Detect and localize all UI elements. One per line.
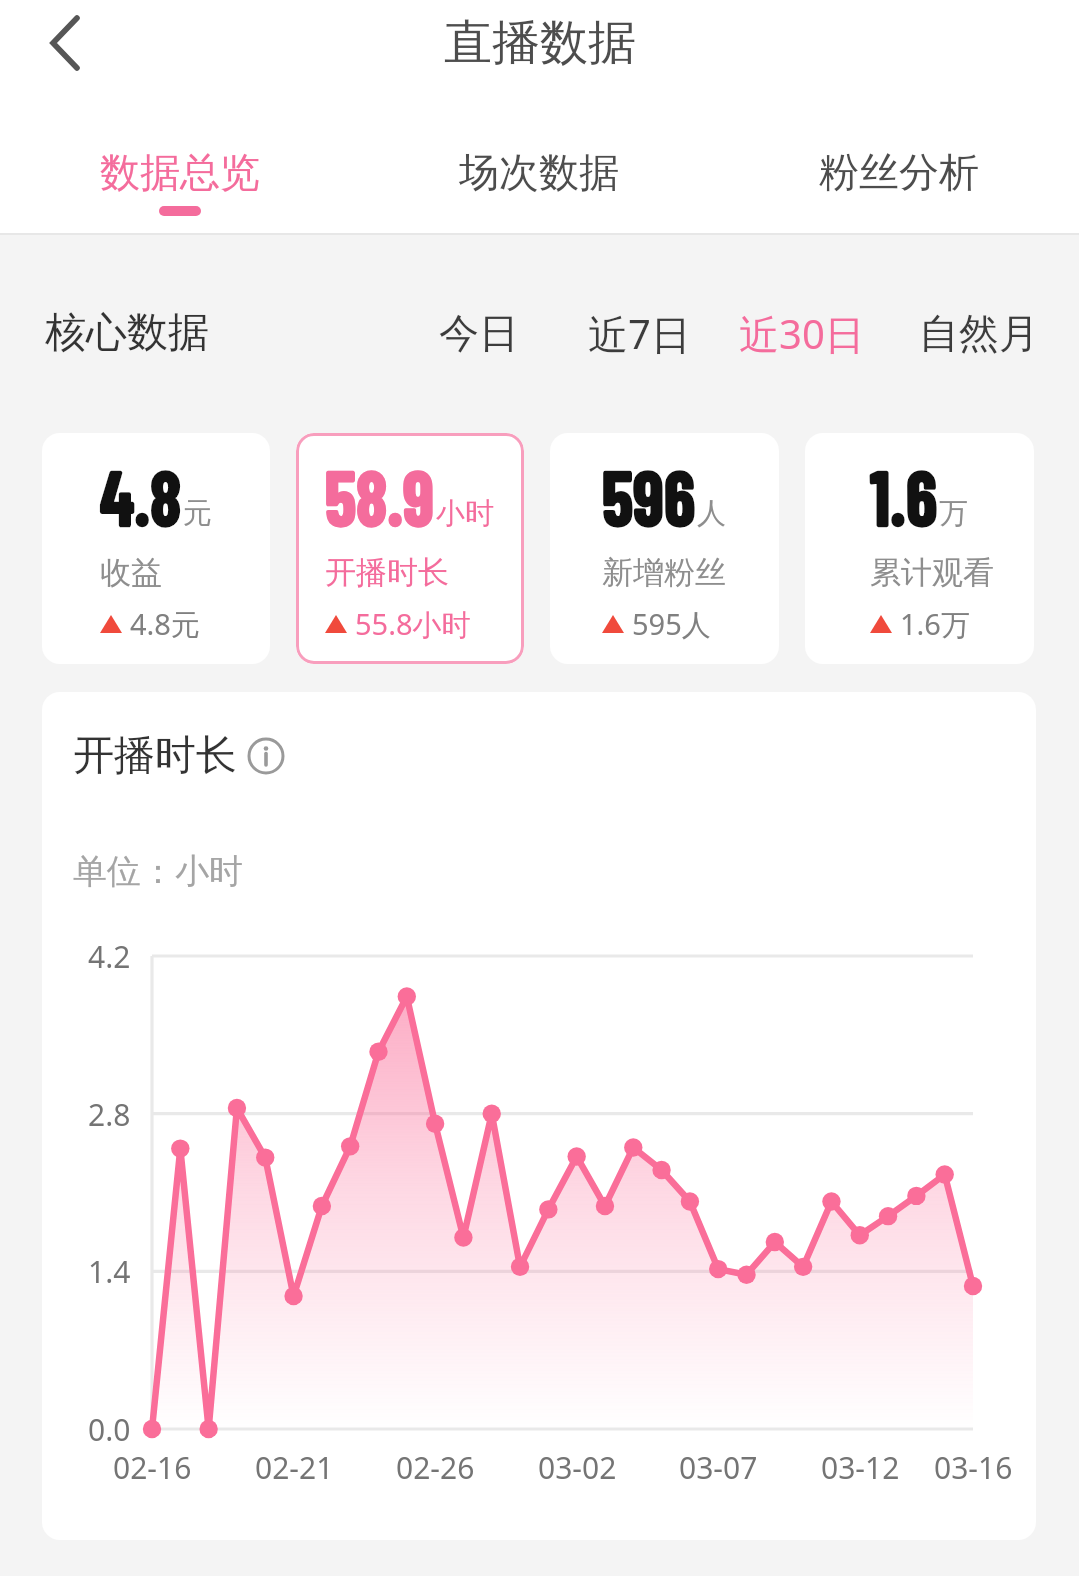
staticText: 1.4 [88,1251,131,1292]
button[interactable]: 1.6 [805,433,1034,664]
staticText: 开播时长 [73,730,237,782]
staticText: 03-02 [538,1447,617,1488]
staticText: 新增粉丝 [602,553,726,592]
staticText: 今日 [439,308,519,358]
staticText: 55.8小时 [355,604,471,644]
staticText: 03-12 [821,1447,900,1488]
button[interactable]: Info [247,737,285,775]
staticText: 02-26 [396,1447,475,1488]
button[interactable]: 4.8 [42,433,270,664]
button[interactable]: 粉丝分析 [719,124,1079,220]
staticText: 03-16 [934,1447,1013,1488]
staticText: 4.8元 [130,604,200,644]
staticText: 4.2 [88,936,131,977]
staticText: 596 [602,449,696,541]
staticText: 02-21 [255,1447,334,1488]
button[interactable]: 近30日 [739,294,865,373]
button[interactable]: 数据总览 [0,124,359,220]
staticText: 收益 [100,553,162,592]
staticText: 03-07 [679,1447,758,1488]
button[interactable]: 近7日 [588,294,691,373]
staticText: 4.8 [100,449,182,541]
staticText: 数据总览 [100,147,260,197]
button[interactable]: 自然月 [919,296,1039,370]
staticText: 粉丝分析 [819,147,979,197]
staticText: 万 [939,495,968,532]
staticText: 近30日 [739,306,865,361]
staticText: 1.6 [870,449,937,541]
button[interactable]: 596 [550,433,779,664]
staticText: 小时 [436,495,494,532]
staticText: 开播时长 [325,553,449,592]
staticText: 1.6万 [900,604,970,644]
staticText: 02-16 [113,1447,192,1488]
staticText: 近7日 [588,306,691,361]
staticText: 元 [183,495,212,532]
staticText: 单位：小时 [73,850,243,893]
staticText: 人 [697,495,726,532]
staticText: 直播数据 [444,13,636,73]
button[interactable]: 58.9 [296,433,524,664]
staticText: 场次数据 [459,147,619,197]
staticText: 核心数据 [45,307,209,359]
button[interactable]: 今日 [439,296,519,370]
staticText: 累计观看 [870,553,994,592]
staticText: 0.0 [88,1409,131,1450]
staticText: 2.8 [88,1094,131,1135]
button[interactable]: 场次数据 [359,124,719,220]
button[interactable]: Back [20,0,110,86]
staticText: 595人 [632,604,711,644]
staticText: 自然月 [919,308,1039,358]
staticText: 58.9 [325,449,434,541]
